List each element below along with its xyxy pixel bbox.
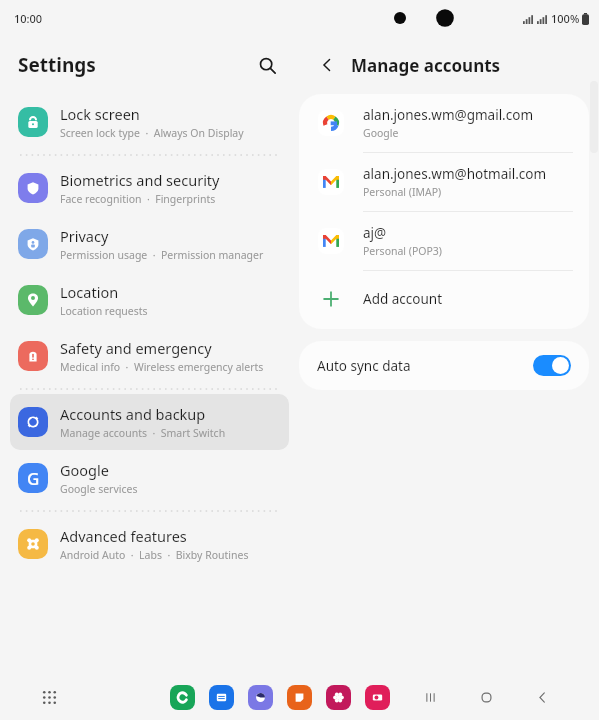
button[interactable]: Back <box>529 684 555 710</box>
button[interactable] <box>287 685 312 710</box>
staticText: Location requests <box>60 304 148 318</box>
button[interactable] <box>248 685 273 710</box>
button[interactable]: Location <box>10 272 289 328</box>
button[interactable]: Auto sync data <box>299 341 589 390</box>
button[interactable]: G <box>10 450 289 506</box>
button[interactable]: Safety and emergency <box>10 328 289 384</box>
staticText: Google <box>363 126 399 140</box>
staticText: Privacy <box>60 226 109 246</box>
staticText: Android Auto · Labs · Bixby Routines <box>60 548 249 562</box>
staticText: Manage accounts · Smart Switch <box>60 426 226 440</box>
staticText: Location <box>60 282 119 302</box>
staticText: Settings <box>18 52 96 78</box>
staticText: Add account <box>363 290 443 308</box>
staticText: Screen lock type · Always On Display <box>60 126 244 140</box>
button[interactable] <box>170 685 195 710</box>
button[interactable]: Search <box>251 49 283 81</box>
staticText: Google <box>60 460 109 480</box>
button[interactable]: alan.jones.wm@gmail.com <box>299 94 589 153</box>
button[interactable]: Recents <box>417 684 443 710</box>
button[interactable]: Add account <box>299 271 589 329</box>
staticText: 100% <box>551 11 580 26</box>
button[interactable]: Biometrics and security <box>10 160 289 216</box>
staticText: Manage accounts <box>351 54 501 77</box>
staticText: Biometrics and security <box>60 170 220 190</box>
staticText: alan.jones.wm@hotmail.com <box>363 165 547 183</box>
staticText: alan.jones.wm@gmail.com <box>363 106 534 124</box>
staticText: Personal (POP3) <box>363 244 443 258</box>
staticText: Face recognition · Fingerprints <box>60 192 216 206</box>
button[interactable] <box>209 685 234 710</box>
staticText: 10:00 <box>14 11 43 26</box>
button[interactable]: Home <box>473 684 499 710</box>
staticText: Personal (IMAP) <box>363 185 442 199</box>
button[interactable]: Back <box>311 49 343 81</box>
staticText: Medical info · Wireless emergency alerts <box>60 360 264 374</box>
staticText: Permission usage · Permission manager <box>60 248 264 262</box>
button[interactable]: Advanced features <box>10 516 289 572</box>
button[interactable]: Apps <box>36 684 62 710</box>
button[interactable]: Accounts and backup <box>10 394 289 450</box>
button[interactable]: alan.jones.wm@hotmail.com <box>299 153 589 212</box>
button[interactable]: Privacy <box>10 216 289 272</box>
staticText: Advanced features <box>60 526 187 546</box>
staticText: Google services <box>60 482 138 496</box>
staticText: Auto sync data <box>317 357 411 375</box>
button[interactable]: Lock screen <box>10 94 289 150</box>
staticText: Safety and emergency <box>60 338 212 358</box>
staticText: G <box>27 467 40 490</box>
staticText: aj@ <box>363 224 387 242</box>
staticText: Accounts and backup <box>60 404 206 424</box>
button[interactable] <box>365 685 390 710</box>
staticText: Lock screen <box>60 104 140 124</box>
button[interactable]: aj@ <box>299 212 589 271</box>
button[interactable] <box>326 685 351 710</box>
